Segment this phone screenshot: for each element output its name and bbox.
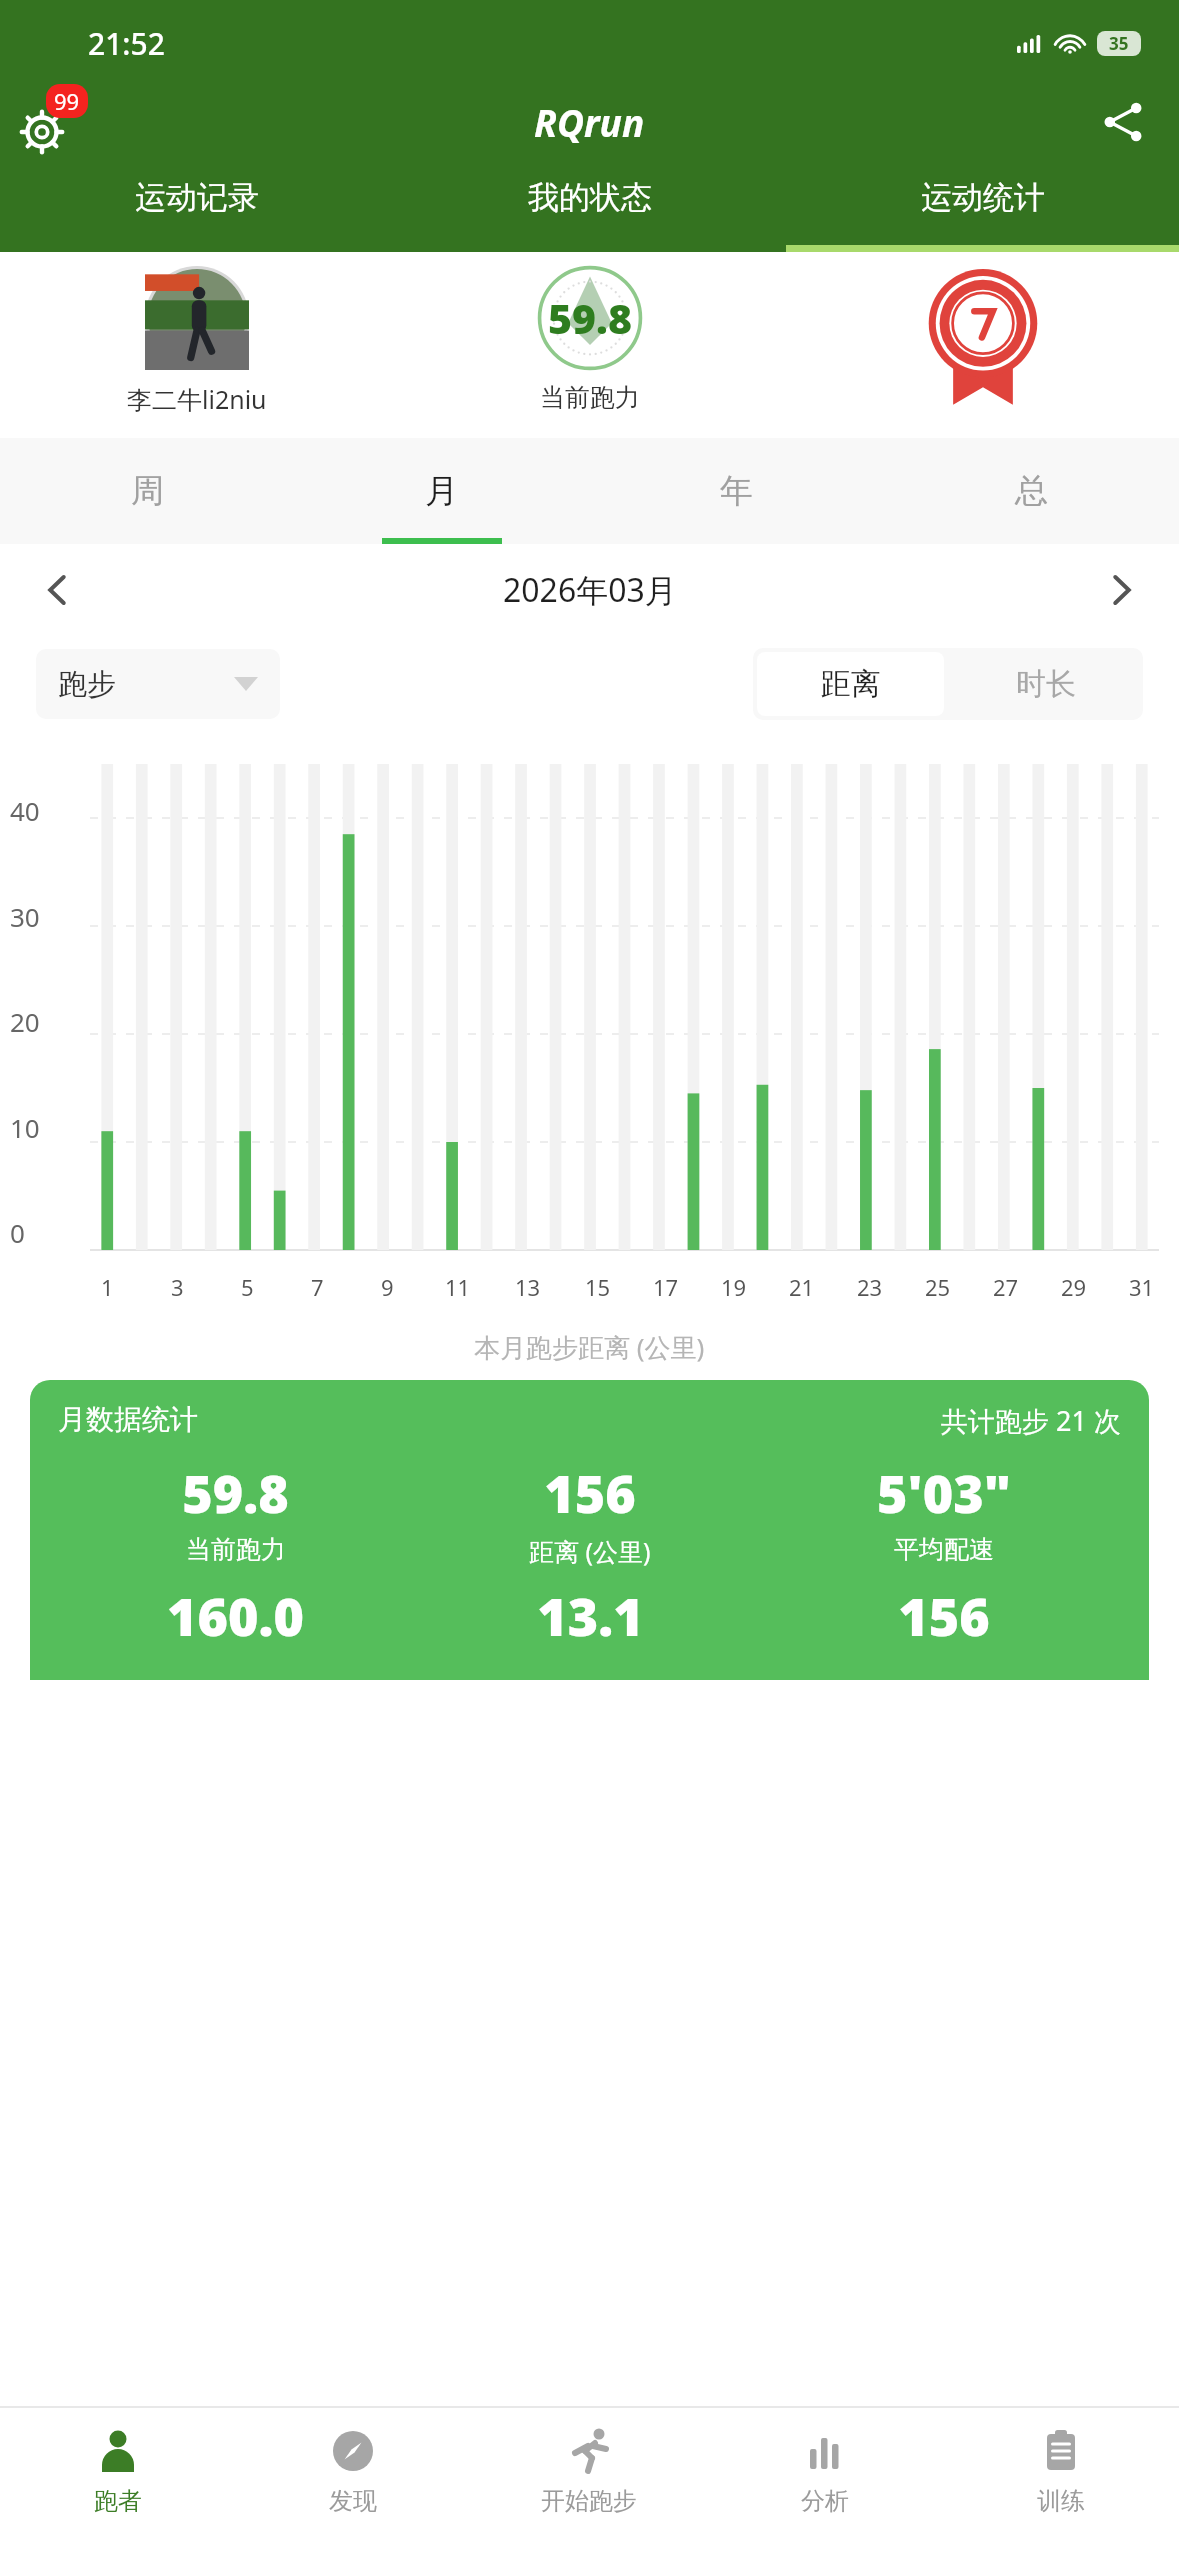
staticText: 10 — [10, 1110, 40, 1145]
button[interactable]: 时长 — [952, 652, 1139, 716]
staticText: 总 — [1015, 470, 1048, 512]
staticText: 平均配速 — [894, 1534, 994, 1565]
staticText: 距离 (公里) — [529, 1534, 651, 1568]
staticText: 5'03" — [877, 1457, 1011, 1528]
staticText: 跑者 — [94, 2486, 142, 2516]
staticText: 运动记录 — [135, 178, 259, 217]
staticText: 时长 — [1016, 665, 1076, 703]
button[interactable]: Previous month — [30, 562, 86, 618]
staticText: 23 — [857, 1272, 883, 1302]
button[interactable]: Settings — [20, 90, 84, 154]
staticText: 17 — [653, 1272, 679, 1302]
staticText: 13.1 — [537, 1580, 644, 1651]
button[interactable]: 发现 — [235, 2408, 471, 2556]
staticText: 3 — [171, 1272, 184, 1302]
staticText: 2026年03月 — [503, 568, 677, 612]
staticText: 160.0 — [167, 1580, 304, 1651]
staticText: 年 — [720, 470, 753, 512]
staticText: 当前跑力 — [540, 382, 640, 413]
staticText: 59.8 — [182, 1457, 289, 1528]
button[interactable]: 我的状态 — [393, 178, 786, 252]
staticText: 分析 — [801, 2486, 849, 2516]
staticText: 我的状态 — [528, 178, 652, 217]
staticText: 5 — [241, 1272, 254, 1302]
staticText: 月 — [425, 470, 458, 512]
staticText: 21:52 — [88, 23, 165, 64]
button[interactable]: 月数据统计 — [30, 1380, 1149, 1680]
button[interactable]: 运动记录 — [0, 178, 393, 252]
button[interactable]: 周 — [0, 438, 294, 544]
staticText: 21 — [789, 1272, 815, 1302]
staticText: 当前跑力 — [186, 1534, 286, 1565]
staticText: 59.8 — [548, 290, 632, 346]
staticText: 开始跑步 — [541, 2486, 637, 2516]
staticText: 13 — [515, 1272, 541, 1302]
button[interactable]: 训练 — [943, 2408, 1179, 2556]
staticText: 9 — [381, 1272, 394, 1302]
button[interactable]: 李二牛li2niu — [0, 266, 393, 416]
staticText: 跑步 — [58, 666, 116, 703]
staticText: 7 — [311, 1272, 324, 1302]
staticText: 35 — [1109, 32, 1129, 55]
staticText: 19 — [721, 1272, 747, 1302]
button[interactable]: 总 — [884, 438, 1179, 544]
button[interactable]: 跑步 — [36, 649, 280, 719]
button[interactable]: 跑者 — [0, 2408, 235, 2556]
staticText: 29 — [1061, 1272, 1087, 1302]
staticText: RQrun — [534, 97, 645, 147]
staticText: 1 — [101, 1272, 114, 1302]
button[interactable]: 运动统计 — [786, 178, 1179, 252]
staticText: 0 — [10, 1215, 25, 1250]
button[interactable]: 年 — [589, 438, 884, 544]
button[interactable]: 59.8 — [393, 266, 786, 413]
button[interactable]: Share — [1095, 94, 1151, 150]
staticText: 25 — [925, 1272, 951, 1302]
button[interactable]: 开始跑步 — [471, 2408, 707, 2556]
staticText: 30 — [10, 899, 40, 934]
button[interactable]: 距离 — [757, 652, 944, 716]
staticText: 11 — [445, 1272, 471, 1302]
button[interactable]: Next month — [1093, 562, 1149, 618]
button[interactable]: 分析 — [707, 2408, 943, 2556]
staticText: 距离 — [821, 665, 881, 703]
staticText: 20 — [10, 1004, 40, 1039]
staticText: 15 — [585, 1272, 611, 1302]
staticText: 40 — [10, 793, 40, 828]
staticText: 运动统计 — [921, 178, 1045, 217]
staticText: 月数据统计 — [58, 1402, 198, 1437]
button[interactable]: Running Quotient badge — [786, 266, 1179, 416]
staticText: 李二牛li2niu — [127, 382, 267, 416]
staticText: 共计跑步 21 次 — [941, 1402, 1121, 1439]
staticText: 周 — [131, 470, 164, 512]
staticText: 训练 — [1037, 2486, 1085, 2516]
staticText: 156 — [544, 1457, 636, 1528]
staticText: 31 — [1129, 1272, 1155, 1302]
staticText: 99 — [54, 86, 80, 116]
staticText: 发现 — [329, 2486, 377, 2516]
staticText: 156 — [898, 1580, 990, 1651]
staticText: 27 — [993, 1272, 1019, 1302]
staticText: 本月跑步距离 (公里) — [474, 1329, 705, 1365]
button[interactable]: 月 — [294, 438, 589, 544]
